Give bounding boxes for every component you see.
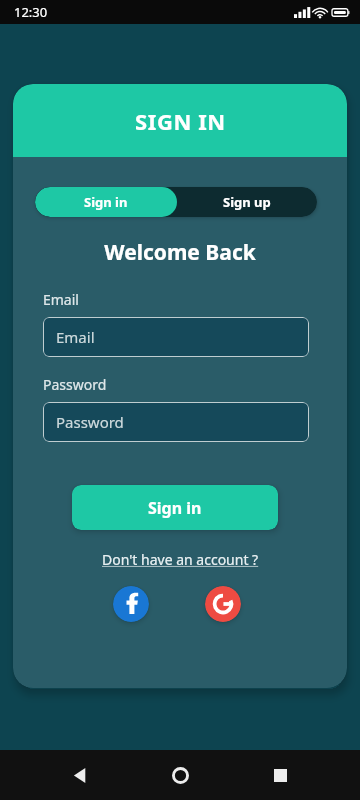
button[interactable]: Password (43, 402, 309, 442)
button[interactable]: Sign in (72, 485, 278, 530)
button[interactable]: Back (62, 757, 98, 793)
button[interactable]: Sign in with Google (205, 586, 241, 622)
staticText: Sign up (223, 193, 271, 211)
staticText: Don't have an account ? (102, 550, 259, 569)
button[interactable]: Home (162, 757, 198, 793)
staticText: Sign in (84, 193, 128, 211)
staticText: Email (43, 290, 79, 309)
button[interactable]: Recent apps (262, 757, 298, 793)
button[interactable]: Email (43, 317, 309, 357)
staticText: Welcome Back (13, 238, 347, 267)
staticText: SIGN IN (135, 106, 226, 136)
staticText: Sign in (148, 497, 202, 519)
staticText: 12:30 (14, 3, 48, 21)
staticText: Password (43, 375, 107, 394)
staticText: Password (56, 412, 124, 432)
button[interactable]: Don't have an account ? (102, 550, 259, 569)
staticText: Email (56, 327, 95, 347)
button[interactable]: Sign up (177, 187, 317, 217)
button[interactable]: Sign in with Facebook (113, 586, 149, 622)
button[interactable]: Sign in (35, 187, 177, 217)
